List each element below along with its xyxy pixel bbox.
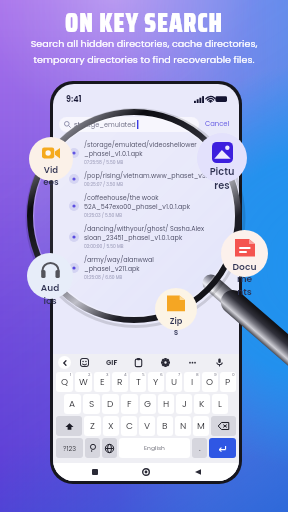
button[interactable]: P <box>220 372 236 392</box>
staticText: Cancel <box>205 119 230 129</box>
button[interactable]: U <box>166 372 182 392</box>
button[interactable]: Audios <box>27 253 73 299</box>
staticText: F <box>127 398 132 411</box>
button[interactable]: Back <box>188 463 208 481</box>
staticText: A <box>69 398 76 411</box>
button[interactable]: Documents <box>221 230 268 277</box>
button[interactable]: H <box>158 394 174 414</box>
staticText: /dancing/withyour/ghost/ Sasha.Alex <box>84 224 205 233</box>
staticText: W <box>79 376 88 389</box>
button[interactable]: Voice input <box>206 354 233 371</box>
button[interactable]: /dancing/withyour/ghost/ Sasha.Alex <box>53 221 239 252</box>
button[interactable]: D <box>102 394 119 414</box>
button[interactable]: O <box>202 372 218 392</box>
staticText: Docume nts <box>229 260 260 299</box>
button[interactable]: Z <box>84 416 101 436</box>
button[interactable]: G <box>140 394 156 414</box>
staticText: 1 <box>70 372 72 378</box>
button[interactable]: S <box>83 394 100 414</box>
staticText: T <box>136 376 141 389</box>
staticText: Y <box>153 376 159 389</box>
button[interactable]: E <box>94 372 110 392</box>
staticText: Aud ios <box>38 282 62 307</box>
staticText: Pictu res <box>207 165 237 192</box>
staticText: sloan_23451_phasel_v1.0.1.apk <box>84 233 183 242</box>
button[interactable]: X <box>103 416 119 436</box>
staticText: J <box>182 398 187 411</box>
staticText: _phasel_v211.apk <box>84 264 140 273</box>
staticText: H <box>163 398 170 411</box>
staticText: . <box>199 443 201 454</box>
staticText: 8 <box>196 372 199 378</box>
button[interactable]: F <box>121 394 138 414</box>
button[interactable]: N <box>175 416 191 436</box>
button[interactable]: I <box>184 372 200 392</box>
staticText: ?123 <box>63 444 77 453</box>
staticText: P <box>225 376 231 389</box>
button[interactable]: B <box>157 416 173 436</box>
staticText: O <box>206 376 214 389</box>
button[interactable]: Settings <box>152 354 179 371</box>
staticText: 01:25:03 / 5.50 MB <box>84 212 122 218</box>
button[interactable]: Zips <box>155 288 197 330</box>
button[interactable]: Clipboard <box>125 354 152 371</box>
button[interactable]: Pictures <box>197 133 247 183</box>
button[interactable]: V <box>139 416 155 436</box>
staticText: /coffeehouse/the wook <box>84 193 159 202</box>
button[interactable]: J <box>176 394 192 414</box>
button[interactable]: W <box>75 372 92 392</box>
staticText: I <box>191 376 194 389</box>
button[interactable]: C <box>121 416 137 436</box>
button[interactable]: A <box>64 394 81 414</box>
button[interactable]: Q <box>56 372 73 392</box>
button[interactable]: L <box>212 394 228 414</box>
staticText: storage_emulated <box>74 120 136 129</box>
button[interactable]: Videos <box>29 137 73 181</box>
button[interactable]: R <box>112 372 128 392</box>
button[interactable]: /coffeehouse/the wook <box>53 190 239 221</box>
staticText: Vid eos <box>40 164 62 188</box>
button[interactable]: /pop/rising/vietnam.www_phaset_v3.0.2.ap… <box>53 168 239 190</box>
button[interactable]: Enter <box>209 438 236 458</box>
button[interactable]: Emoji <box>85 438 100 458</box>
staticText: 5 <box>142 372 145 378</box>
staticText: G <box>144 398 152 411</box>
staticText: 9:41 <box>66 94 82 105</box>
button[interactable]: Back <box>58 356 71 369</box>
button[interactable]: Recents <box>85 463 105 481</box>
button[interactable]: Backspace <box>211 416 236 436</box>
staticText: Z <box>90 420 95 433</box>
button[interactable]: English <box>119 438 190 458</box>
staticText: E <box>100 376 105 389</box>
button[interactable]: Y <box>148 372 164 392</box>
staticText: 3 <box>106 372 109 378</box>
button[interactable]: /army/way/alanwwal <box>53 252 239 283</box>
staticText: _phasel_v1.0.1.apk <box>84 149 143 158</box>
staticText: 7 <box>178 372 181 378</box>
staticText: U <box>171 376 178 389</box>
staticText: S <box>89 398 95 411</box>
button[interactable]: GIF <box>98 354 125 371</box>
button[interactable]: Shift <box>56 416 82 436</box>
staticText: /storage/emulated/videoshellower <box>84 140 197 149</box>
staticText: 01:25:08 / 6.60 MB <box>84 274 123 280</box>
staticText: 9 <box>214 372 217 378</box>
button[interactable]: More <box>179 354 206 371</box>
staticText: Q <box>61 376 69 389</box>
button[interactable]: Sticker <box>71 354 98 371</box>
button[interactable]: Change language <box>102 438 117 458</box>
button[interactable]: . <box>192 438 207 458</box>
staticText: B <box>162 420 168 433</box>
button[interactable]: K <box>194 394 210 414</box>
button[interactable]: storage_emulated <box>59 117 199 132</box>
staticText: K <box>199 398 205 411</box>
staticText: 52A_547exo00_phasel_v1.0.1.apk <box>84 202 190 211</box>
button[interactable]: T <box>130 372 146 392</box>
button[interactable]: Home <box>136 463 156 481</box>
staticText: N <box>180 420 187 433</box>
button[interactable]: Cancel <box>199 114 235 134</box>
button[interactable]: M <box>193 416 209 436</box>
staticText: V <box>144 420 151 433</box>
button[interactable]: ?123 <box>56 438 83 458</box>
button[interactable]: /storage/emulated/videoshellower <box>53 137 239 168</box>
